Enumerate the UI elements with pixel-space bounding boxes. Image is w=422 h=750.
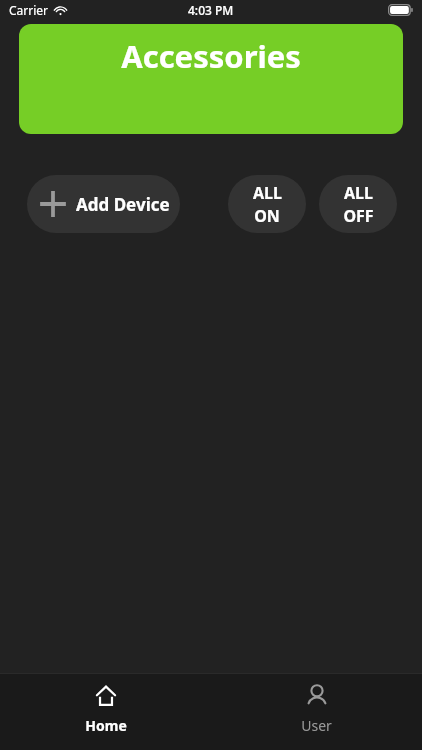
staticText: ON [254, 205, 280, 227]
button[interactable]: ALL [319, 175, 397, 233]
button[interactable]: Accessories [19, 24, 403, 134]
staticText: 4:03 PM [188, 2, 234, 18]
staticText: Add Device [76, 193, 170, 216]
button[interactable]: Add Device [27, 175, 180, 233]
staticText: User [301, 716, 332, 735]
staticText: Home [85, 716, 127, 735]
staticText: ALL [344, 182, 373, 204]
staticText: OFF [343, 205, 374, 227]
button[interactable]: ALL [228, 175, 306, 233]
button[interactable]: Home [0, 674, 211, 750]
staticText: Carrier [9, 2, 49, 18]
staticText: ALL [253, 182, 282, 204]
button[interactable]: User [211, 674, 422, 750]
staticText: Accessories [121, 35, 301, 77]
